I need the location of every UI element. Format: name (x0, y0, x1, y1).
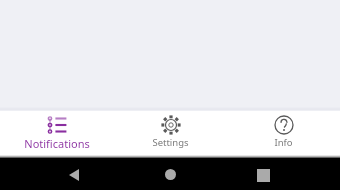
button[interactable]: Settings (114, 111, 227, 158)
button[interactable]: Info (227, 111, 340, 158)
button[interactable]: Notifications (0, 111, 114, 158)
staticText: Info (274, 136, 293, 149)
staticText: Settings (152, 136, 189, 149)
button[interactable]: Home (165, 169, 176, 180)
button[interactable]: Back (69, 169, 79, 181)
staticText: Notifications (24, 136, 90, 151)
